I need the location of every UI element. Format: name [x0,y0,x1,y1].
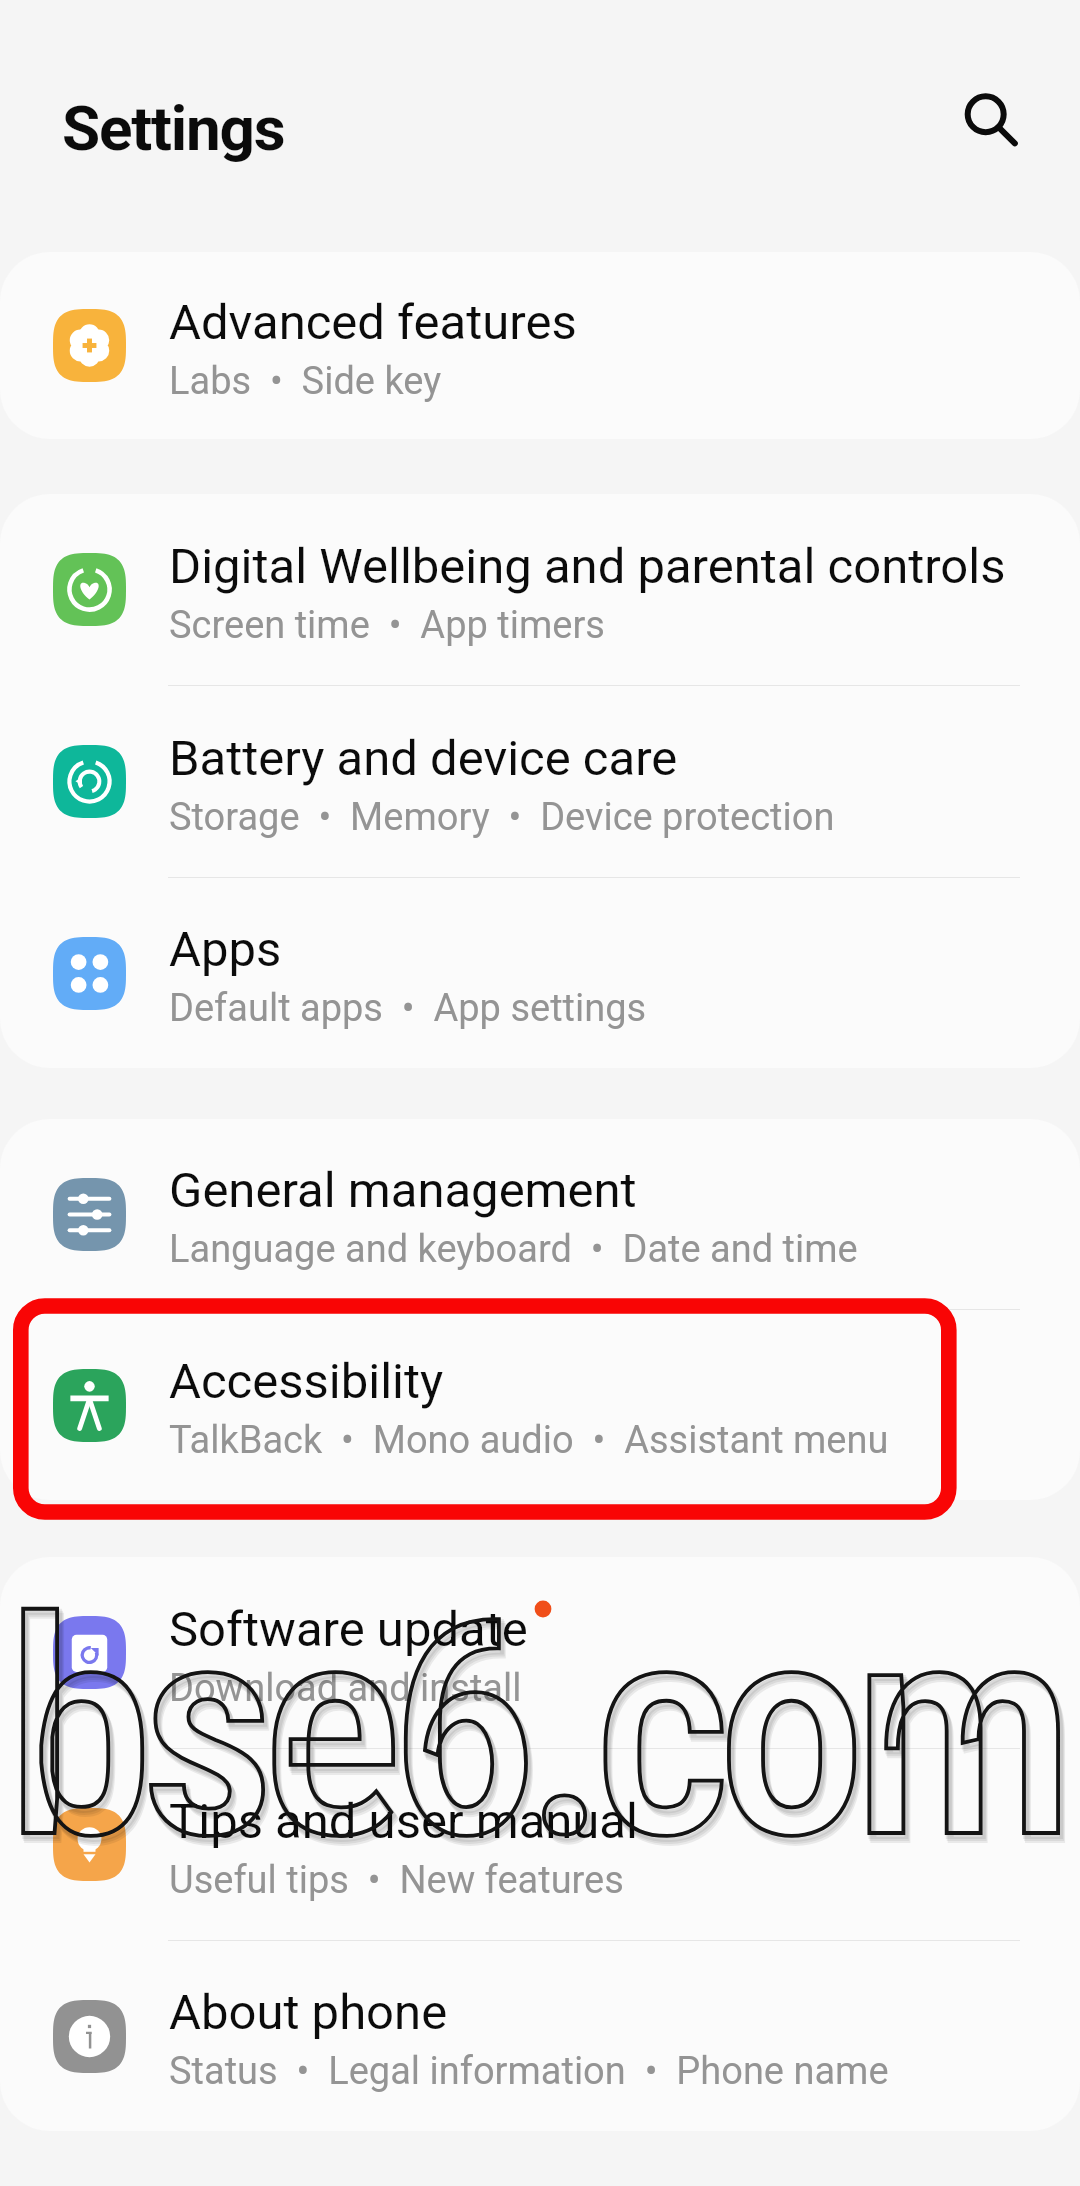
button[interactable]: Tips and user manual [0,1749,1080,1940]
button[interactable]: Search [942,72,1038,168]
staticText: Screen time • App timers [169,603,605,648]
staticText: Advanced features [169,294,577,351]
staticText: Language and keyboard • Date and time [169,1227,858,1272]
staticText: Labs • Side key [169,359,442,404]
staticText: Digital Wellbeing and parental controls [169,538,1006,595]
staticText: Tips and user manual [169,1793,638,1850]
staticText: Accessibility [169,1353,444,1410]
staticText: Useful tips • New features [169,1858,624,1903]
staticText: TalkBack • Mono audio • Assistant menu [169,1418,889,1463]
staticText: Software update [169,1601,528,1658]
button[interactable]: Apps [0,878,1080,1068]
staticText: bse6.com [6,1556,1062,1906]
staticText: Apps [169,921,282,978]
staticText: Download and install [169,1666,522,1711]
staticText: Storage • Memory • Device protection [169,795,835,840]
button[interactable]: Advanced features [0,252,1080,439]
button[interactable]: Software update [0,1557,1080,1748]
staticText: Settings [62,92,285,165]
staticText: About phone [169,1984,448,2041]
button[interactable]: Accessibility [0,1310,1080,1500]
staticText: bse6.com [10,1563,1066,1913]
staticText: Status • Legal information • Phone name [169,2049,889,2094]
button[interactable]: Battery and device care [0,686,1080,877]
staticText: General management [169,1162,637,1219]
button[interactable]: Digital Wellbeing and parental controls [0,494,1080,685]
staticText: bse6.com [8,1559,1064,1909]
button[interactable]: About phone [0,1941,1080,2131]
staticText: Default apps • App settings [169,986,647,1031]
staticText: Battery and device care [169,730,678,787]
staticText: bse6.com [9,1561,1065,1911]
button[interactable]: General management [0,1119,1080,1309]
